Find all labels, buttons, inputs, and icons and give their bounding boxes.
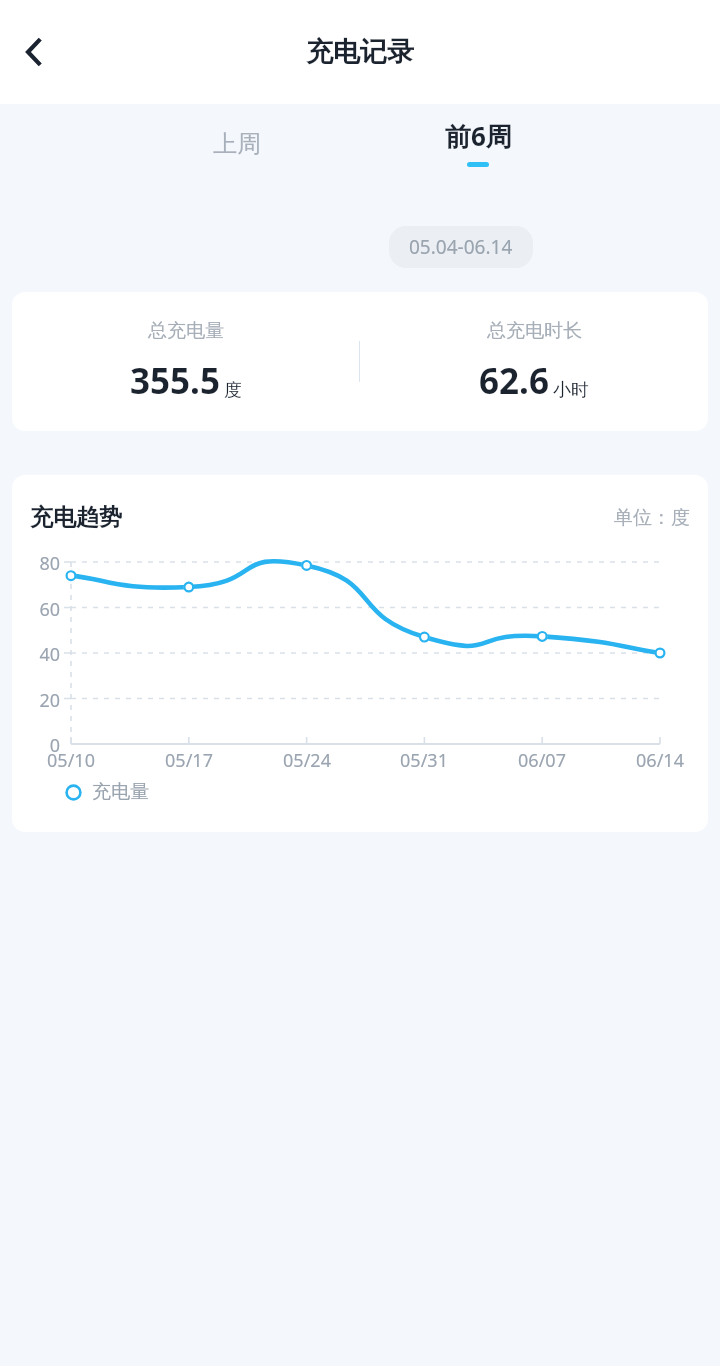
staticText: 05/10 [39,748,103,773]
staticText: 单位：度 [614,506,690,530]
staticText: 充电记录 [306,35,414,69]
staticText: 上周 [213,129,261,159]
staticText: 05/17 [157,748,221,773]
staticText: 度 [224,379,242,402]
staticText: 05/31 [392,748,456,773]
staticText: 06/07 [510,748,574,773]
button[interactable]: 前6周 [418,118,538,167]
staticText: 总充电量 [148,319,224,343]
staticText: 充电量 [92,780,149,804]
staticText: 05.04-06.14 [409,234,513,260]
staticText: 60 [12,597,60,622]
button[interactable]: 05.04-06.14 [389,226,533,268]
staticText: 总充电时长 [487,319,582,343]
staticText: 40 [12,642,60,667]
staticText: 前6周 [445,118,512,154]
staticText: 充电趋势 [30,503,122,532]
staticText: 06/14 [628,748,692,773]
staticText: 80 [12,551,60,576]
button[interactable]: Back [8,26,60,78]
staticText: 0 [12,733,60,758]
staticText: 62.6 [479,357,549,405]
staticText: 小时 [553,379,589,402]
staticText: 355.5 [130,357,220,405]
staticText: 20 [12,688,60,713]
button[interactable]: 上周 [177,122,297,166]
staticText: 05/24 [275,748,339,773]
